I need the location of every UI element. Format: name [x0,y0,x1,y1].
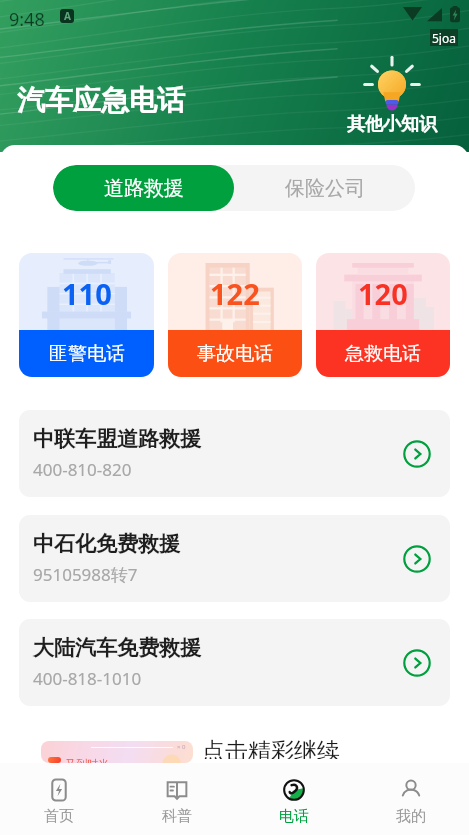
staticText: 道路救援 [104,176,184,201]
staticText: 匪警电话 [49,342,125,366]
staticText: 400-818-1010 [33,667,142,690]
staticText: 其他小知识 [347,113,437,136]
button[interactable]: 大陆汽车免费救援 [19,619,450,706]
button[interactable]: 首页 [0,763,118,835]
button[interactable]: × 0 [41,741,193,763]
button[interactable]: 中联车盟道路救援 [19,410,450,497]
other: 拨打 中石化免费救援 [403,545,431,573]
staticText: 汽车应急电话 [17,83,185,118]
staticText: 110 [62,274,112,313]
button[interactable]: 电话 [235,763,352,835]
staticText: 400-810-820 [33,458,132,481]
button[interactable]: 我的 [352,763,469,835]
staticText: 5joa [432,30,456,45]
button[interactable]: 科普 [118,763,235,835]
staticText: 95105988转7 [33,563,138,586]
staticText: 保险公司 [285,176,365,201]
staticText: 科普 [162,807,192,826]
staticText: 事故电话 [197,342,273,366]
staticText: 点击精彩继续 [202,737,340,759]
staticText: 中石化免费救援 [33,531,180,557]
button[interactable]: 110 [19,253,154,377]
button[interactable]: 保险公司 [234,165,415,211]
other: 拨打 大陆汽车免费救援 [403,649,431,677]
staticText: 我的 [396,807,426,826]
staticText: 急救电话 [345,342,421,366]
staticText: 首页 [44,807,74,826]
button[interactable]: 中石化免费救援 [19,515,450,602]
staticText: 中联车盟道路救援 [33,426,201,452]
staticText: 120 [358,274,408,313]
staticText: 又到时光 [65,757,109,763]
other: 拨打 中联车盟道路救援 [403,440,431,468]
staticText: 122 [210,274,260,313]
staticText: 大陆汽车免费救援 [33,635,201,661]
button[interactable]: 道路救援 [53,165,234,211]
staticText: × 0 [177,743,186,751]
staticText: 9:48 [9,7,45,32]
staticText: 电话 [279,807,309,826]
button[interactable]: 122 [168,253,302,377]
staticText: A [64,9,71,23]
button[interactable]: 其他小知识 [347,61,437,136]
button[interactable]: 120 [316,253,450,377]
